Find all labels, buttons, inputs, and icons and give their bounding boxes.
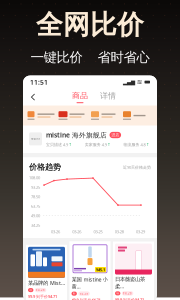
staticText: 卖家服务 4.9 bbox=[85, 142, 107, 147]
staticText: ¥9.9 到手价¥4.71 bbox=[71, 297, 100, 300]
staticText: ≋ bbox=[137, 78, 143, 86]
staticText: 03-25 bbox=[93, 229, 102, 234]
staticText: 进店 bbox=[111, 133, 119, 137]
staticText: 49.00 bbox=[31, 213, 40, 218]
staticText: mistine 海外旗舰店 bbox=[46, 131, 107, 139]
staticText: 详情 bbox=[100, 91, 116, 101]
button[interactable]: 详情 bbox=[100, 91, 116, 103]
staticText: 某国 mistine 小黄… bbox=[71, 276, 107, 290]
staticText: 34.25 bbox=[31, 223, 40, 228]
staticText: 近90天价格走势 bbox=[123, 164, 151, 170]
staticText: ↑ bbox=[107, 142, 110, 147]
staticText: 93.25 bbox=[31, 185, 40, 190]
staticText: mistine bbox=[30, 137, 40, 141]
staticText: 价格趋势 bbox=[29, 162, 61, 172]
staticText: ▂▄▆ bbox=[123, 79, 135, 85]
staticText: 78.50 bbox=[31, 194, 40, 199]
button[interactable]: 商品 bbox=[72, 91, 88, 103]
button[interactable]: ¥45.1 bbox=[69, 241, 110, 300]
staticText: ¥4.28 bbox=[36, 288, 45, 292]
staticText: 省时省心 bbox=[97, 49, 149, 66]
staticText: 宝贝描述 4.9 bbox=[46, 142, 68, 147]
button[interactable]: 日本薇姿山茶柔… bbox=[113, 241, 154, 300]
staticText: 03-26 bbox=[72, 229, 81, 234]
staticText: ↑ bbox=[146, 142, 149, 147]
staticText: ¥9.9 到手价¥4.71 bbox=[28, 294, 57, 299]
staticText: 03-29 bbox=[136, 229, 145, 234]
staticText: ¥4.28 bbox=[80, 292, 89, 295]
staticText: 03-26 bbox=[51, 229, 60, 234]
staticText: 商品 bbox=[72, 91, 88, 101]
staticText: 03-28 bbox=[115, 229, 124, 234]
staticText: 某品牌的 Mist… bbox=[28, 279, 65, 286]
staticText: 全网比价 bbox=[36, 8, 144, 41]
staticText: ¥9.9 到手价¥4.71 bbox=[115, 297, 144, 300]
staticText: 一键比价 bbox=[30, 49, 82, 66]
button[interactable]: mistine bbox=[23, 126, 157, 153]
staticText: 日本薇姿山茶柔… bbox=[115, 276, 145, 290]
button[interactable]: Back bbox=[28, 90, 38, 105]
staticText: 11:51 bbox=[30, 78, 48, 86]
staticText: 63.75 bbox=[31, 204, 40, 209]
staticText: ↑ bbox=[69, 142, 72, 147]
staticText: 物流服务 4.8 bbox=[123, 142, 145, 147]
staticText: ¥4.28 bbox=[123, 292, 132, 295]
staticText: ¥45.1 bbox=[96, 267, 105, 272]
staticText: 补 bbox=[73, 292, 76, 295]
button[interactable]: 某品牌的 Mist… bbox=[26, 245, 67, 300]
staticText: 补 bbox=[116, 292, 119, 295]
staticText: 补 bbox=[29, 288, 32, 292]
staticText: 108.00 bbox=[29, 175, 40, 180]
